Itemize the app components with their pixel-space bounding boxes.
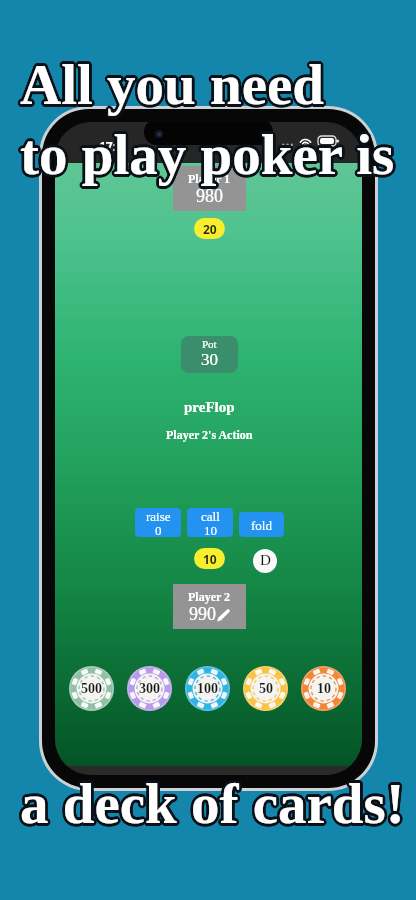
staticText: 980 — [196, 186, 223, 206]
staticText: D — [260, 552, 271, 569]
staticText: raise — [146, 509, 171, 523]
staticText: Player 1 — [188, 172, 231, 185]
button[interactable]: Chip 50 — [243, 666, 288, 711]
button[interactable]: call — [187, 508, 233, 537]
button[interactable]: Chip 100 — [185, 666, 230, 711]
staticText: 990 — [189, 604, 216, 624]
staticText: 500 — [81, 681, 102, 697]
staticText: 300 — [139, 681, 160, 697]
staticText: 20 — [203, 221, 217, 237]
staticText: fold — [251, 518, 272, 532]
staticText: 50 — [259, 681, 273, 697]
button[interactable]: fold — [239, 512, 284, 537]
staticText: Player 2's Action — [166, 428, 253, 441]
staticText: 10 — [317, 681, 331, 697]
button[interactable]: raise — [135, 508, 181, 537]
button[interactable]: Chip 10 — [301, 666, 346, 711]
staticText: Player 2 — [188, 590, 231, 603]
staticText: 10 — [203, 551, 217, 567]
button[interactable]: Dealer button — [253, 549, 277, 573]
button[interactable]: Player 2 — [173, 584, 246, 629]
staticText: 10 — [204, 523, 217, 537]
staticText: 17:11 — [99, 138, 130, 154]
button[interactable]: Chip 300 — [127, 666, 172, 711]
staticText: call — [201, 509, 220, 523]
button[interactable]: Player 1 — [173, 166, 246, 211]
staticText: 30 — [201, 350, 218, 369]
staticText: 0 — [155, 523, 162, 537]
staticText: Pot — [202, 338, 217, 350]
staticText: preFlop — [184, 399, 235, 416]
staticText: 100 — [197, 681, 218, 697]
button[interactable]: Chip 500 — [69, 666, 114, 711]
button[interactable]: Pot — [181, 336, 238, 373]
